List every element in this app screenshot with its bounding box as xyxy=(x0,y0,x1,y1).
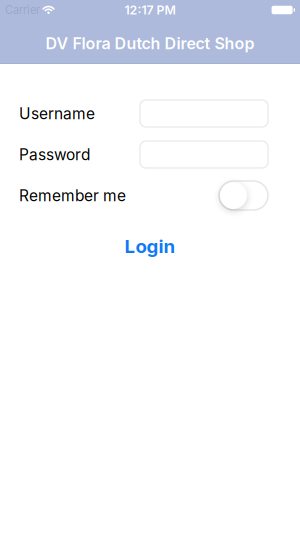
button[interactable] xyxy=(140,100,268,127)
staticText: Remember me xyxy=(19,186,126,205)
staticText: Password xyxy=(19,145,90,164)
staticText: 12:17 PM xyxy=(124,2,175,17)
button[interactable] xyxy=(219,181,268,210)
staticText: Login xyxy=(124,235,175,258)
button[interactable]: Login xyxy=(124,235,175,258)
staticText: DV Flora Dutch Direct Shop xyxy=(45,34,254,53)
staticText: Username xyxy=(19,104,95,123)
button[interactable] xyxy=(140,141,268,168)
staticText: Carrier xyxy=(5,3,40,17)
